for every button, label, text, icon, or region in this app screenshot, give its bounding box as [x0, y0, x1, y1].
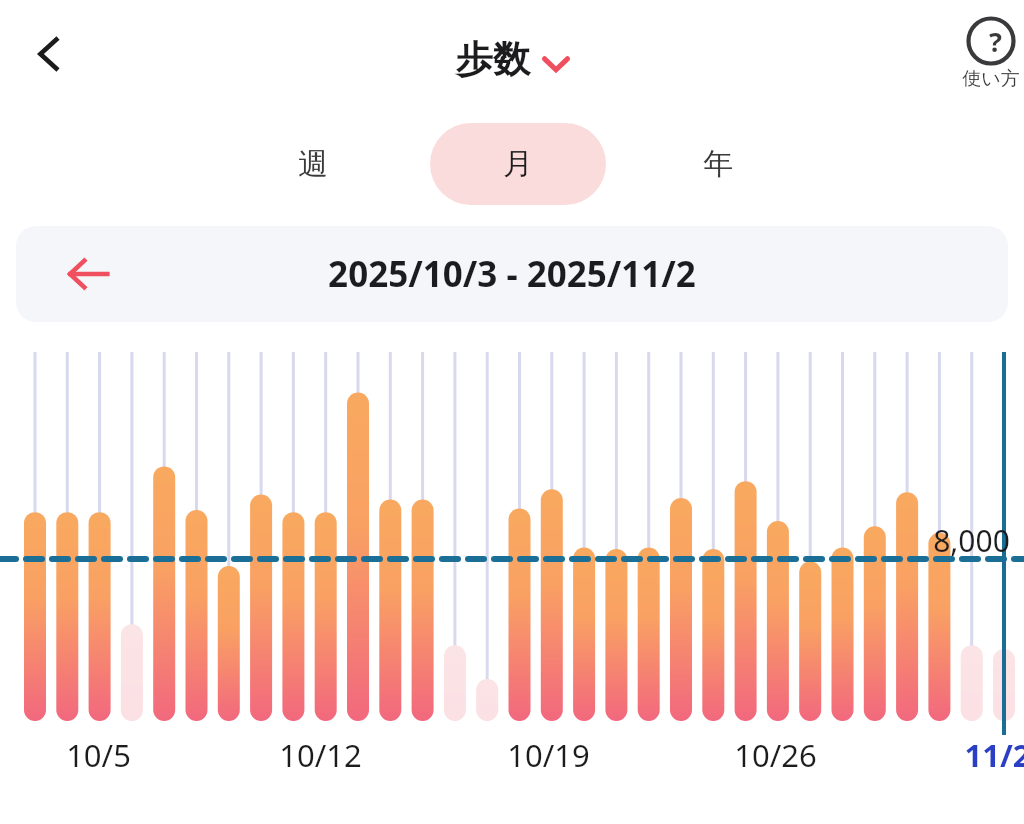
staticText: 10/5: [66, 734, 131, 776]
staticText: 10/12: [279, 734, 362, 776]
button[interactable]: Back: [14, 18, 86, 90]
button[interactable]: 歩数: [456, 36, 569, 83]
staticText: 2025/10/3 - 2025/11/2: [328, 250, 696, 298]
button[interactable]: 月: [430, 123, 606, 205]
button[interactable]: Previous period: [50, 236, 126, 312]
staticText: 月: [503, 145, 533, 183]
button[interactable]: 使い方 Help: [962, 16, 1020, 91]
staticText: 使い方: [962, 67, 1020, 91]
staticText: 年: [703, 145, 733, 183]
staticText: 11/2: [964, 734, 1024, 776]
staticText: ?: [989, 23, 1002, 60]
staticText: 10/19: [507, 734, 590, 776]
staticText: 週: [298, 145, 328, 183]
staticText: 10/26: [734, 734, 817, 776]
staticText: 歩数: [456, 36, 530, 83]
button[interactable]: Previous period: [16, 226, 1008, 322]
button[interactable]: 年: [660, 123, 776, 205]
staticText: 8,000: [933, 520, 1010, 561]
button[interactable]: 週: [255, 123, 371, 205]
